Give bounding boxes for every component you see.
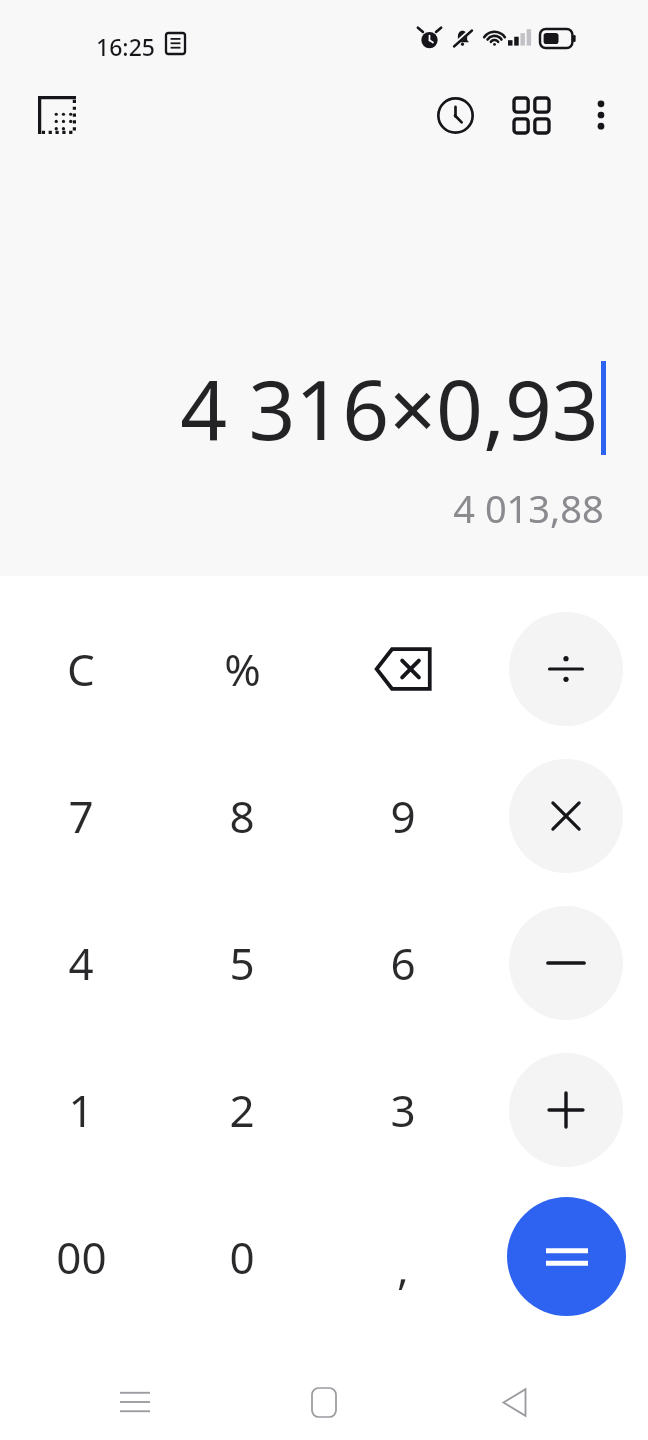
button[interactable]: 1 — [6, 1040, 156, 1180]
staticText: 00 — [56, 1227, 107, 1287]
button[interactable]: 0 — [167, 1187, 317, 1327]
button[interactable]: Home — [269, 1364, 379, 1440]
staticText: C — [67, 639, 95, 699]
staticText: 4 013,88 — [453, 482, 604, 534]
button[interactable]: Small window — [24, 82, 90, 148]
staticText: 4 316×0,93 — [180, 352, 599, 464]
staticText: , — [397, 1237, 409, 1297]
staticText: 2 — [229, 1080, 255, 1140]
button[interactable]: Recent apps — [80, 1364, 190, 1440]
staticText: 3 — [390, 1080, 416, 1140]
button[interactable]: Backspace — [328, 599, 478, 739]
button[interactable]: 5 — [167, 893, 317, 1033]
button[interactable]: 2 — [167, 1040, 317, 1180]
button[interactable]: 3 — [328, 1040, 478, 1180]
staticText: 7 — [68, 786, 94, 846]
staticText: 16:25 — [96, 31, 155, 62]
button[interactable]: 00 — [6, 1187, 156, 1327]
button[interactable]: 7 — [6, 746, 156, 886]
button[interactable]: Equals — [507, 1197, 626, 1316]
button[interactable]: Back — [459, 1364, 569, 1440]
staticText: % — [224, 639, 261, 699]
staticText: 0 — [229, 1227, 255, 1287]
staticText: 8 — [229, 786, 255, 846]
button[interactable]: History — [422, 82, 488, 148]
button[interactable]: Multiply — [509, 759, 623, 873]
button[interactable]: More options — [568, 82, 634, 148]
button[interactable]: 6 — [328, 893, 478, 1033]
button[interactable]: Add — [509, 1053, 623, 1167]
staticText: 5 — [229, 933, 255, 993]
staticText: 9 — [390, 786, 416, 846]
button[interactable]: , — [328, 1187, 478, 1327]
button[interactable]: % — [167, 599, 317, 739]
button[interactable]: 4 — [6, 893, 156, 1033]
button[interactable]: 9 — [328, 746, 478, 886]
staticText: 6 — [390, 933, 416, 993]
button[interactable]: 8 — [167, 746, 317, 886]
button[interactable]: C — [6, 599, 156, 739]
staticText: 4 — [68, 933, 94, 993]
button[interactable]: Divide — [509, 612, 623, 726]
button[interactable]: Scientific calculator — [498, 82, 564, 148]
button[interactable]: Subtract — [509, 906, 623, 1020]
staticText: 1 — [68, 1080, 94, 1140]
